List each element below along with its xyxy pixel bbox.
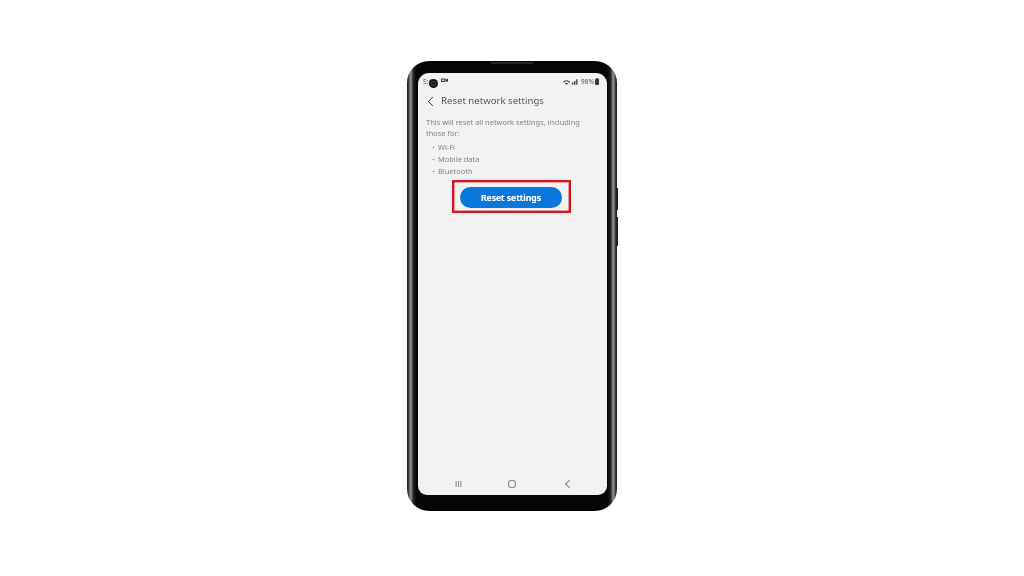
staticText: 98% bbox=[581, 77, 594, 86]
button[interactable]: Back bbox=[555, 472, 579, 495]
button[interactable]: Navigate up bbox=[422, 93, 438, 109]
button[interactable]: Home bbox=[500, 472, 524, 495]
staticText: Wi-Fi bbox=[438, 142, 456, 152]
staticText: Bluetooth bbox=[438, 166, 473, 176]
button[interactable]: Reset settings bbox=[460, 187, 562, 208]
staticText: This will reset all network settings, in… bbox=[426, 117, 584, 138]
staticText: Mobile data bbox=[438, 154, 480, 164]
staticText: Reset network settings bbox=[441, 94, 544, 107]
staticText: Reset settings bbox=[481, 192, 541, 204]
button[interactable]: Recent apps bbox=[446, 472, 470, 495]
staticText: 5:45 bbox=[423, 77, 436, 86]
